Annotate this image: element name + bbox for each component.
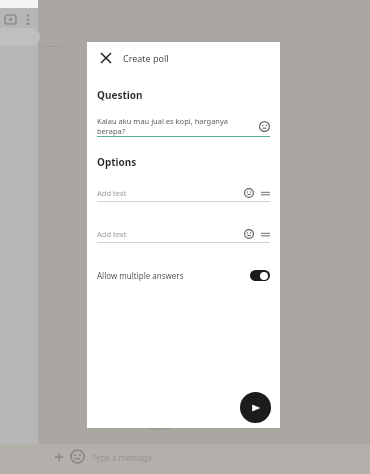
staticText: Kalau aku mau jual es kopi, harganya ber…: [97, 116, 255, 136]
staticText: Add text: [97, 188, 244, 198]
button[interactable]: Insert emoji: [244, 229, 254, 239]
button[interactable]: Insert emoji: [259, 121, 270, 132]
button[interactable]: Insert emoji: [244, 188, 254, 198]
staticText: Create poll: [123, 52, 169, 64]
button[interactable]: Reorder option: [261, 189, 270, 198]
staticText: Add text: [97, 229, 244, 239]
button[interactable]: Add text: [97, 225, 270, 243]
staticText: Question: [97, 88, 143, 102]
button[interactable]: Allow multiple answers: [87, 263, 280, 287]
staticText: 4:26 PM: [148, 424, 171, 432]
staticText: Allow multiple answers: [97, 270, 184, 281]
staticText: Options: [97, 155, 137, 169]
button[interactable]: Add text: [97, 184, 270, 202]
button[interactable]: Reorder option: [261, 230, 270, 239]
button[interactable]: Close: [95, 47, 117, 69]
button[interactable]: Kalau aku mau jual es kopi, harganya ber…: [97, 115, 270, 137]
button[interactable]: Send poll: [240, 392, 271, 423]
staticText: Type a message: [92, 452, 153, 463]
